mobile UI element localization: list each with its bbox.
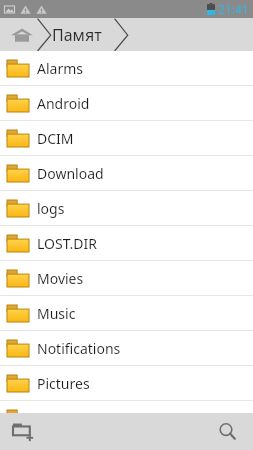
staticText: 21:41 — [218, 1, 249, 17]
staticText: Alarms — [37, 59, 83, 78]
button[interactable]: Notifications — [0, 331, 253, 365]
button[interactable]: Android — [0, 86, 253, 120]
button[interactable]: Download — [0, 156, 253, 190]
staticText: Movies — [37, 269, 84, 288]
staticText: Music — [37, 304, 76, 323]
staticText: Podcasts — [37, 409, 96, 428]
button[interactable]: DCIM — [0, 121, 253, 155]
button[interactable]: LOST.DIR — [0, 226, 253, 260]
button[interactable]: Ringtones — [0, 436, 253, 450]
staticText: LOST.DIR — [37, 234, 98, 253]
button[interactable]: New folder — [4, 413, 42, 450]
staticText: Pictures — [37, 374, 90, 393]
staticText: Android — [37, 94, 90, 113]
button[interactable]: Pictures — [0, 366, 253, 400]
button[interactable]: Память т — [52, 18, 110, 51]
staticText: Notifications — [37, 339, 121, 358]
staticText: Download — [37, 164, 104, 183]
staticText: Память т — [52, 24, 110, 46]
button[interactable]: Movies — [0, 261, 253, 295]
button[interactable]: Music — [0, 296, 253, 330]
button[interactable]: Search — [209, 413, 247, 450]
button[interactable]: Home — [0, 18, 44, 51]
button[interactable]: Alarms — [0, 51, 253, 85]
button[interactable]: logs — [0, 191, 253, 225]
staticText: logs — [37, 199, 65, 218]
staticText: DCIM — [37, 129, 74, 148]
button[interactable]: Podcasts — [0, 401, 253, 435]
